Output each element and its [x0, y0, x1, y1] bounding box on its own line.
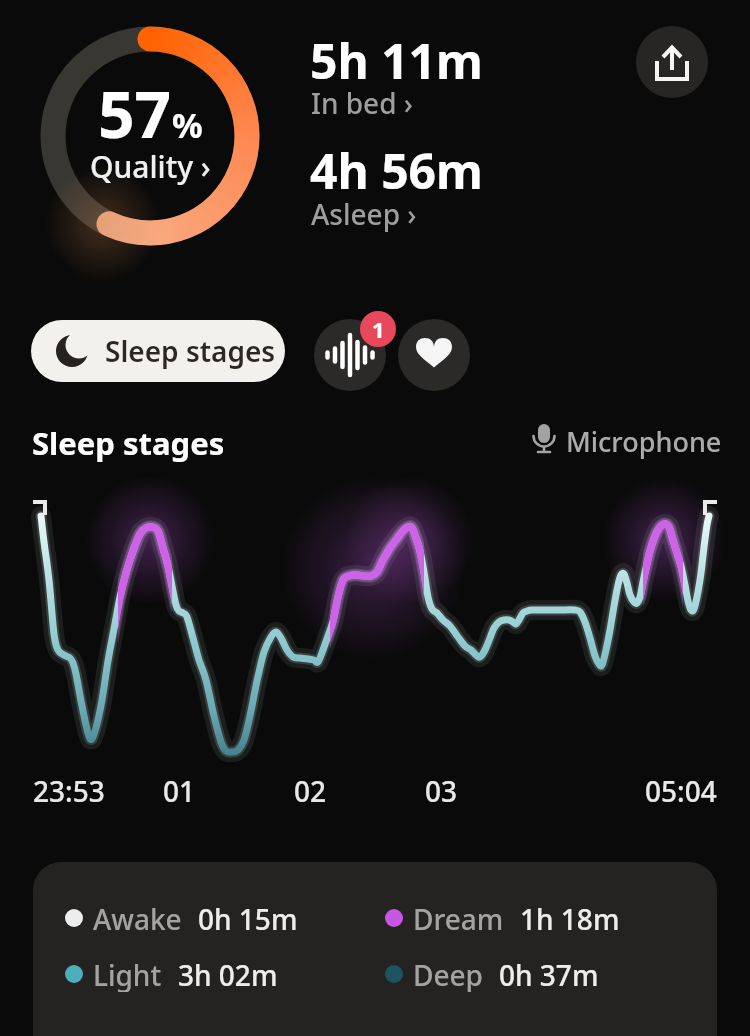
staticText: 0h 37m	[499, 956, 599, 992]
staticText: 01	[163, 772, 196, 810]
button[interactable]: Asleep ›	[311, 195, 417, 233]
staticText: 05:04	[645, 772, 717, 810]
button[interactable]: Dream	[385, 900, 620, 936]
button[interactable]: Light	[65, 956, 278, 992]
staticText: 57	[98, 70, 172, 157]
staticText: 23:53	[33, 772, 105, 810]
staticText: Deep	[413, 956, 483, 992]
staticText: Sleep stages	[105, 332, 276, 370]
button[interactable]: Awake	[65, 900, 298, 936]
staticText: %	[172, 102, 203, 148]
staticText: 3h 02m	[178, 956, 278, 992]
button[interactable]: Deep	[385, 956, 599, 992]
staticText: In bed ›	[311, 84, 413, 122]
staticText: 1	[372, 314, 385, 344]
staticText: Awake	[93, 900, 182, 936]
staticText: 4h 56m	[310, 138, 483, 203]
button[interactable]: Microphone	[528, 420, 718, 460]
button[interactable]: In bed ›	[311, 84, 413, 122]
staticText: 1h 18m	[520, 900, 620, 936]
staticText: Microphone	[566, 423, 722, 460]
staticText: 02	[294, 772, 327, 810]
staticText: Dream	[413, 900, 504, 936]
button[interactable]: Sleep stages	[31, 320, 285, 382]
staticText: Quality ›	[90, 146, 211, 187]
staticText: Light	[93, 956, 162, 992]
staticText: 5h 11m	[310, 28, 483, 93]
staticText: Sleep stages	[32, 422, 225, 464]
staticText: 03	[425, 772, 458, 810]
staticText: 0h 15m	[198, 900, 298, 936]
button[interactable]	[398, 319, 470, 391]
button[interactable]	[636, 26, 708, 98]
staticText: Asleep ›	[311, 195, 417, 233]
button[interactable]: 57	[40, 24, 260, 244]
button[interactable]	[314, 319, 386, 391]
